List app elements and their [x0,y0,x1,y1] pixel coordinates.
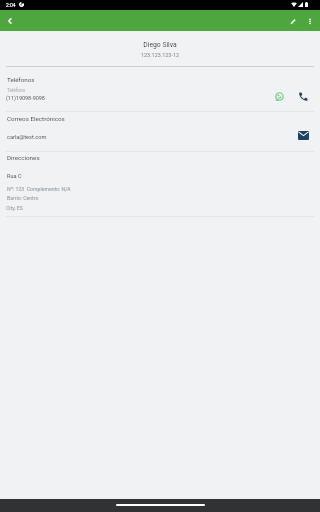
button[interactable]: carla@test.com [0,128,320,145]
staticText: Diego Silva [0,41,320,49]
button[interactable]: Send WhatsApp message [270,87,288,105]
button[interactable]: Rua C [0,168,320,214]
button[interactable]: Back [1,12,19,30]
staticText: Direcciones [7,154,40,161]
staticText: City, ES [6,205,23,211]
staticText: Rua C [7,173,22,180]
staticText: carla@test.com [7,134,47,141]
button[interactable]: Call [294,87,312,105]
button[interactable]: Send email [295,127,311,143]
staticText: Barrio: Centro [7,195,39,201]
staticText: (11)19098-9098 [6,95,45,101]
staticText: Teléfonos [7,76,35,83]
staticText: 2:04 [6,2,16,8]
staticText: Correos Electrónicos [7,115,65,122]
button[interactable]: More options [301,12,319,30]
staticText: Nº: 123 Complemento: N/A [7,186,71,192]
button[interactable]: Teléfono [0,86,320,107]
button[interactable]: Edit [284,12,302,30]
staticText: Teléfono [7,88,26,94]
staticText: 123.123.123-12 [0,52,320,58]
